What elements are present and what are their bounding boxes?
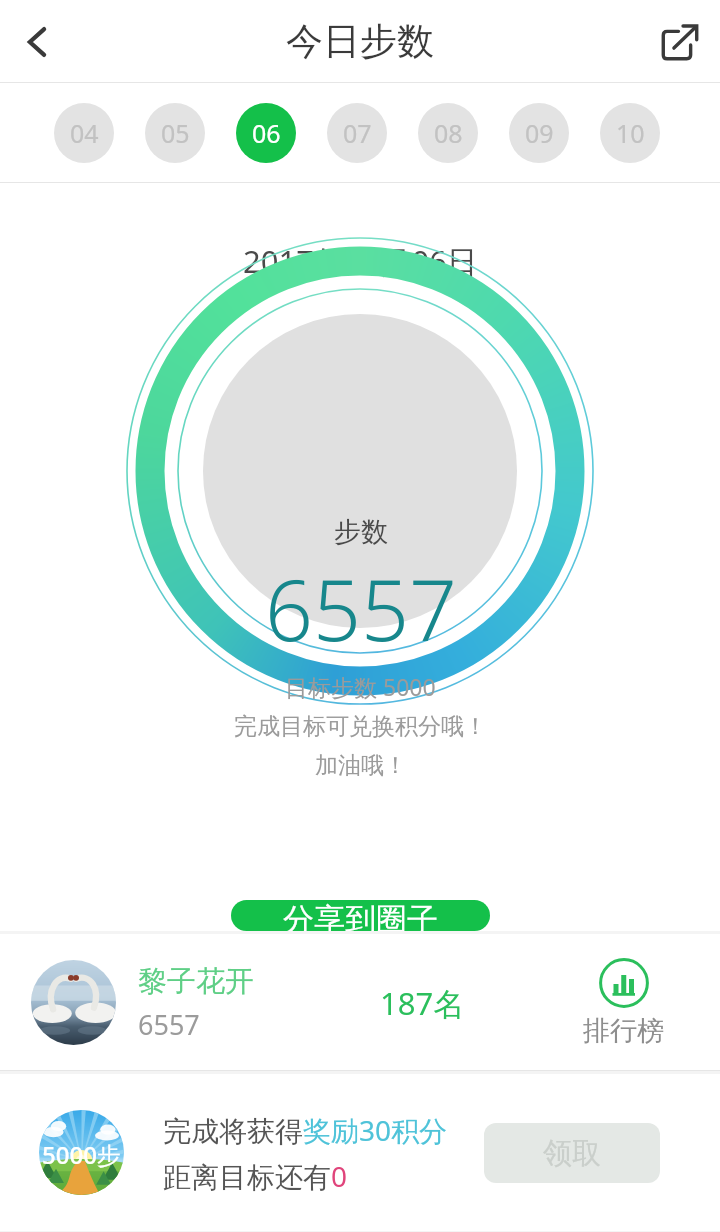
button[interactable]: Back [0,4,76,80]
button[interactable]: 分享到圈子 [231,900,490,931]
staticText: 领取 [543,1135,601,1172]
button[interactable]: 黎子花开 [0,934,720,1071]
staticText: 09 [525,116,554,150]
button[interactable]: 领取 [484,1123,660,1183]
staticText: 分享到圈子 [283,900,438,931]
button[interactable]: 排行榜 [583,958,664,1048]
button[interactable]: Share [640,2,720,82]
staticText: 步数 [334,515,388,549]
staticText: 距离目标还有0 [163,1157,348,1195]
button[interactable]: 04 [54,103,114,163]
staticText: 完成目标可兑换积分哦！ [234,712,487,741]
button[interactable]: 07 [327,103,387,163]
staticText: 完成将获得奖励30积分 [163,1111,448,1149]
staticText: 排行榜 [583,1014,664,1048]
staticText: 6557 [265,551,457,665]
staticText: 06 [252,116,281,150]
staticText: 04 [70,116,99,150]
staticText: 2017年05月06日 [243,240,478,282]
button[interactable]: 10 [600,103,660,163]
staticText: 5000步 [42,1138,121,1171]
staticText: 黎子花开 [138,963,254,1000]
button[interactable]: 06 [236,103,296,163]
staticText: 6557 [138,1006,200,1043]
button[interactable]: 08 [418,103,478,163]
staticText: 今日步数 [286,18,434,65]
staticText: 08 [434,116,463,150]
staticText: 05 [161,116,190,150]
staticText: 10 [616,116,645,150]
button[interactable]: 09 [509,103,569,163]
staticText: 目标步数 5000 [285,671,436,702]
staticText: 07 [343,116,372,150]
button[interactable]: 05 [145,103,205,163]
staticText: 加油哦！ [315,751,407,780]
staticText: 187名 [380,982,465,1024]
